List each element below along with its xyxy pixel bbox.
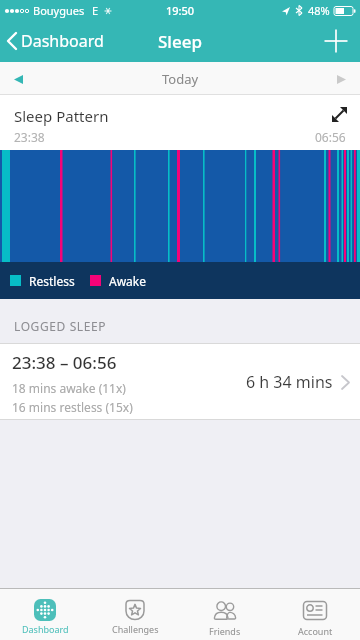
button[interactable]: Dashboard: [0, 589, 90, 640]
staticText: Challenges: [112, 623, 159, 635]
staticText: 6 h 34 mins: [246, 371, 333, 393]
staticText: 23:38: [14, 129, 45, 145]
button[interactable]: 23:38 – 06:56: [0, 343, 360, 420]
staticText: Sleep Pattern: [14, 106, 109, 126]
staticText: Dashboard: [22, 623, 69, 635]
staticText: Bouygues: [33, 3, 85, 18]
button[interactable]: Dashboard: [6, 30, 104, 52]
staticText: E: [92, 3, 99, 18]
staticText: Restless: [29, 273, 75, 289]
staticText: Today: [162, 70, 199, 88]
staticText: 23:38 – 06:56: [12, 351, 117, 374]
staticText: 18 mins awake (11x): [12, 380, 126, 396]
button[interactable]: Account: [270, 589, 360, 640]
button[interactable]: [322, 27, 350, 55]
staticText: 19:50: [166, 3, 195, 18]
button[interactable]: Challenges: [90, 589, 180, 640]
staticText: Account: [298, 625, 333, 637]
staticText: LOGGED SLEEP: [14, 318, 107, 334]
button[interactable]: [326, 101, 352, 127]
staticText: 06:56: [315, 129, 346, 145]
staticText: 48%: [308, 3, 330, 18]
staticText: 16 mins restless (15x): [12, 399, 133, 415]
staticText: Sleep: [158, 30, 202, 53]
button[interactable]: [330, 68, 352, 90]
staticText: Awake: [109, 273, 147, 289]
staticText: Friends: [209, 625, 241, 637]
button[interactable]: [7, 68, 29, 90]
staticText: Dashboard: [21, 30, 104, 52]
button[interactable]: Friends: [180, 589, 270, 640]
